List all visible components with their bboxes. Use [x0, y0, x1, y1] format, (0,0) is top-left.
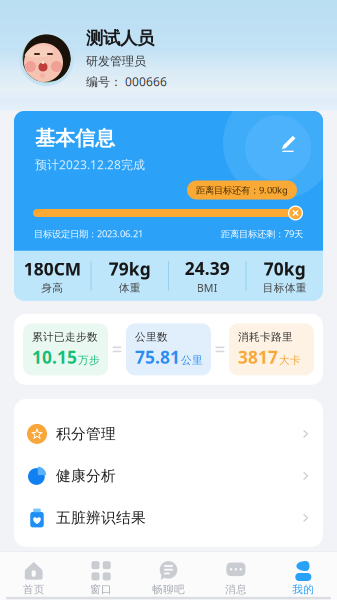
staticText: 3817: [238, 345, 278, 368]
staticText: 累计已走步数: [32, 330, 98, 343]
staticText: 研发管理员: [86, 54, 146, 68]
staticText: 体重: [119, 281, 141, 294]
staticText: 身高: [41, 281, 63, 294]
staticText: 消耗卡路里: [238, 330, 293, 343]
staticText: 编号： 000666: [86, 73, 167, 89]
button[interactable]: 消息: [202, 554, 270, 594]
staticText: 75.81: [135, 345, 180, 368]
staticText: 目标设定日期：2023.06.21: [34, 227, 143, 240]
button[interactable]: 首页: [0, 554, 67, 594]
staticText: 公里: [181, 354, 203, 367]
staticText: 大卡: [279, 354, 301, 367]
staticText: 畅聊吧: [152, 583, 185, 596]
staticText: 目标体重: [263, 281, 307, 294]
staticText: 测试人员: [86, 27, 154, 49]
staticText: 预计2023.12.28完成: [35, 157, 145, 172]
staticText: 基本信息: [35, 126, 115, 151]
staticText: 积分管理: [56, 425, 116, 443]
staticText: 五脏辨识结果: [56, 509, 146, 527]
button[interactable]: 我的: [270, 554, 337, 594]
staticText: 我的: [292, 583, 314, 596]
staticText: 180CM: [24, 257, 81, 280]
button[interactable]: 健康分析: [14, 455, 323, 497]
button[interactable]: 窗口: [67, 554, 135, 594]
staticText: 距离目标还剩：79天: [221, 227, 303, 240]
staticText: 24.39: [185, 257, 230, 280]
button[interactable]: 畅聊吧: [135, 554, 202, 594]
staticText: 首页: [23, 583, 45, 596]
button[interactable]: 五脏辨识结果: [14, 497, 323, 539]
button[interactable]: 积分管理: [14, 413, 323, 455]
staticText: BMI: [197, 281, 218, 295]
staticText: 健康分析: [56, 467, 116, 485]
staticText: 70kg: [264, 257, 306, 280]
staticText: 公里数: [135, 330, 168, 343]
staticText: 窗口: [90, 583, 112, 596]
staticText: 距离目标还有：9.00kg: [196, 184, 288, 196]
staticText: 万步: [78, 354, 100, 367]
staticText: 79kg: [109, 257, 151, 280]
staticText: 消息: [225, 583, 247, 596]
staticText: 10.15: [32, 345, 77, 368]
button[interactable]: 编辑: [271, 126, 307, 162]
